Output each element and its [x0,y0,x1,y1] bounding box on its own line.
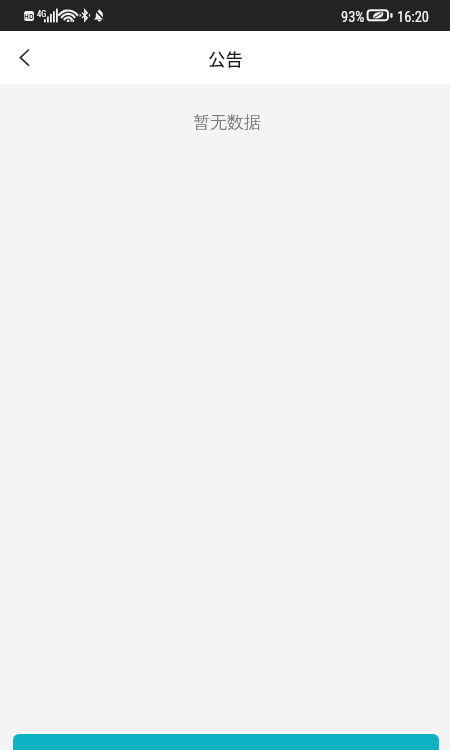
button[interactable]: Back [0,31,48,84]
staticText: 93% [341,9,365,26]
staticText: 16:20 [397,9,430,26]
staticText: 暂无数据 [193,112,261,133]
staticText: 公告 [208,46,243,71]
button[interactable]: Confirm [13,734,439,750]
staticText: 4G [37,9,47,19]
staticText: HD [24,12,34,21]
